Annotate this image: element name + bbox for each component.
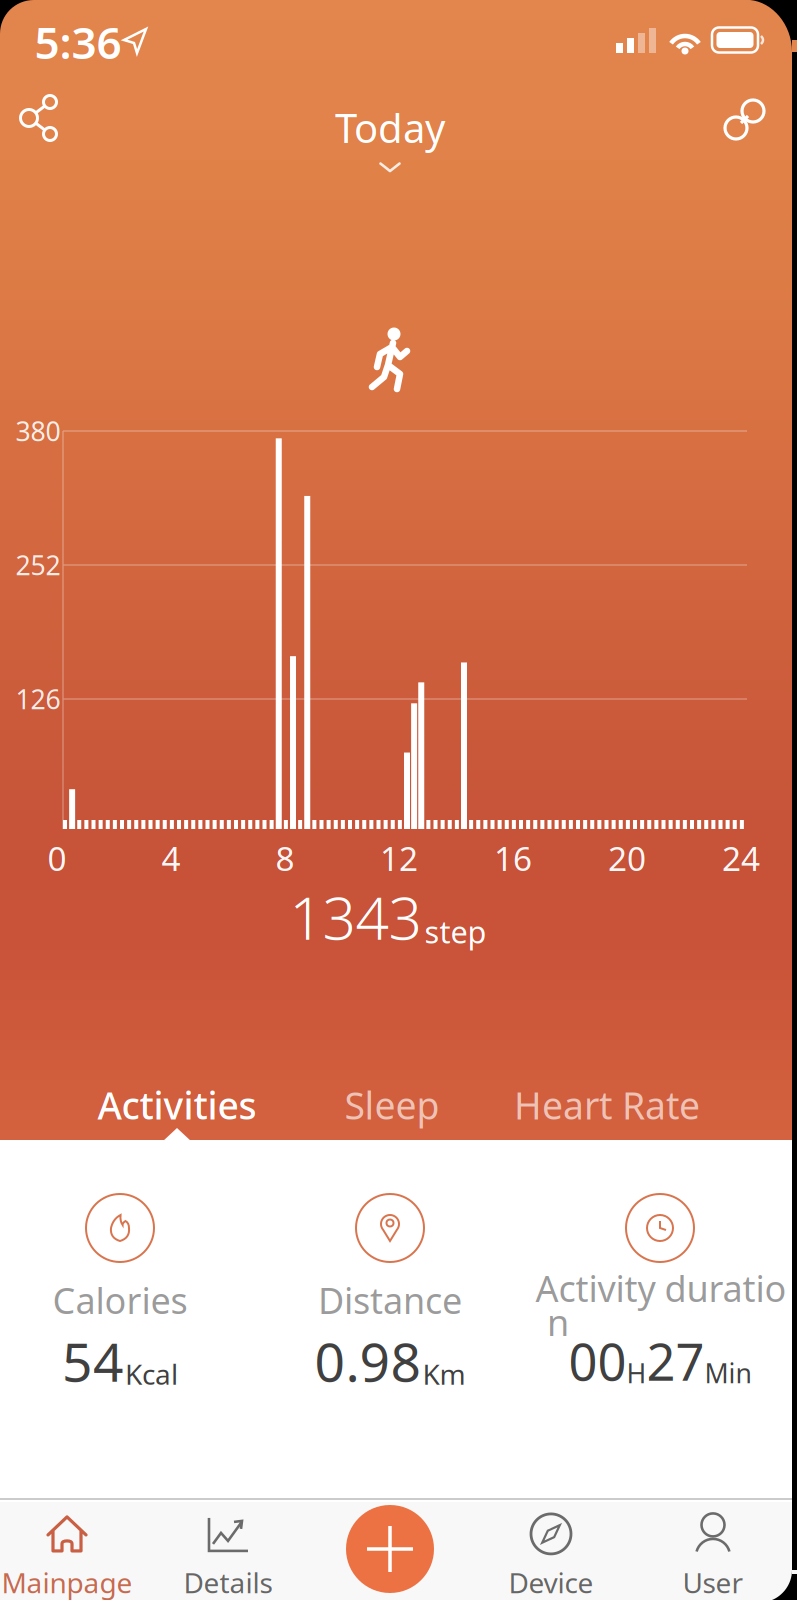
staticText: Activities xyxy=(97,1080,256,1130)
staticText: 12 xyxy=(380,836,418,880)
button[interactable]: Share xyxy=(12,88,68,148)
staticText: Distance xyxy=(318,1276,462,1324)
staticText: 24 xyxy=(722,836,760,880)
staticText: H xyxy=(626,1355,646,1391)
staticText: 0 xyxy=(47,836,66,880)
staticText: Today xyxy=(335,101,445,154)
staticText: n xyxy=(547,1298,569,1346)
button[interactable]: Activities xyxy=(97,1080,256,1130)
staticText: Kcal xyxy=(125,1355,178,1392)
staticText: 8 xyxy=(275,836,294,880)
staticText: 00 xyxy=(568,1327,626,1395)
staticText: 0.98 xyxy=(314,1326,421,1396)
staticText: 27 xyxy=(646,1327,704,1395)
button[interactable]: Link device xyxy=(722,98,766,142)
staticText: Device xyxy=(508,1564,593,1600)
staticText: Km xyxy=(422,1355,465,1392)
staticText: 252 xyxy=(15,547,60,583)
button[interactable]: Today xyxy=(335,101,445,173)
staticText: Activity duratio xyxy=(535,1264,786,1312)
staticText: User xyxy=(682,1564,743,1600)
button[interactable]: Mainpage xyxy=(0,1513,144,1600)
staticText: step xyxy=(424,911,486,952)
button[interactable]: Heart Rate xyxy=(514,1080,700,1130)
staticText: Sleep xyxy=(344,1080,439,1130)
button[interactable]: Details xyxy=(150,1513,305,1600)
staticText: 126 xyxy=(15,681,60,717)
staticText: 16 xyxy=(494,836,532,880)
staticText: 4 xyxy=(161,836,180,880)
staticText: Calories xyxy=(52,1276,187,1324)
button[interactable]: User xyxy=(635,1513,790,1600)
staticText: Mainpage xyxy=(1,1564,132,1600)
staticText: 5:36 xyxy=(34,13,121,71)
staticText: 380 xyxy=(15,413,60,449)
staticText: Heart Rate xyxy=(514,1080,700,1130)
staticText: 1343 xyxy=(289,878,421,956)
staticText: 54 xyxy=(62,1326,124,1396)
staticText: Min xyxy=(704,1355,751,1391)
button[interactable]: Add xyxy=(346,1505,434,1593)
staticText: Details xyxy=(183,1564,272,1600)
button[interactable]: Device xyxy=(473,1513,628,1600)
button[interactable]: Sleep xyxy=(344,1080,439,1130)
staticText: 20 xyxy=(608,836,646,880)
